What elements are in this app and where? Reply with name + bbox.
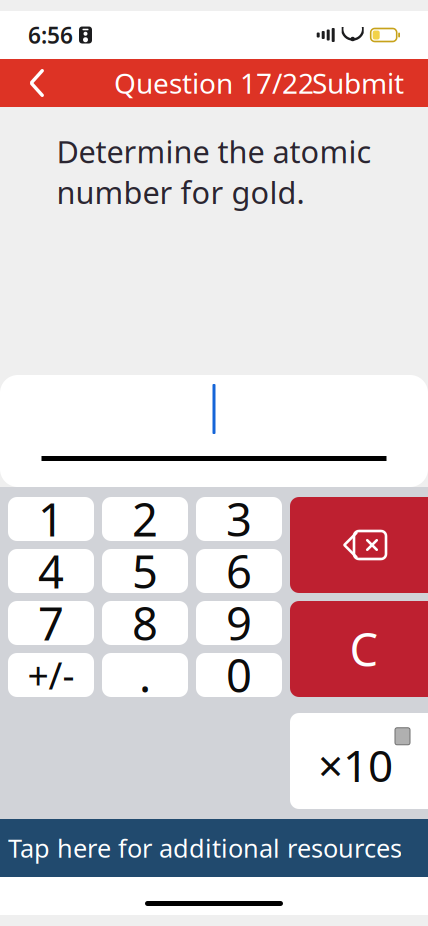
button[interactable]: 9 — [196, 601, 282, 645]
staticText: Question 17/22 — [114, 64, 314, 102]
staticText: 9 — [226, 593, 252, 653]
staticText: Determine the atomic number for gold. — [56, 131, 371, 212]
button[interactable]: ×10 — [290, 713, 428, 809]
button[interactable]: 3 — [196, 497, 282, 541]
staticText: 3 — [226, 489, 252, 549]
staticText: 6:56 — [28, 20, 73, 50]
button[interactable]: 7 — [8, 601, 94, 645]
staticText: 4 — [38, 541, 64, 601]
staticText: 7 — [38, 593, 64, 653]
button[interactable]: C — [290, 601, 428, 697]
button[interactable]: 8 — [102, 601, 188, 645]
button[interactable]: 5 — [102, 549, 188, 593]
button[interactable]: Submit — [298, 59, 418, 107]
button[interactable]: 2 — [102, 497, 188, 541]
staticText: 2 — [132, 489, 158, 549]
staticText: 5 — [132, 541, 158, 601]
staticText: C — [349, 619, 378, 679]
button[interactable]: +/- — [8, 653, 94, 697]
staticText: 1 — [38, 489, 64, 549]
button[interactable]: 6 — [196, 549, 282, 593]
button[interactable]: Back — [10, 59, 64, 107]
button[interactable]: 0 — [196, 653, 282, 697]
button[interactable]: Tap here for additional resources — [0, 819, 428, 877]
button[interactable]: 4 — [8, 549, 94, 593]
button[interactable]: 1 — [8, 497, 94, 541]
staticText: Tap here for additional resources — [8, 831, 402, 865]
staticText: ×10 — [318, 736, 393, 794]
staticText: 0 — [226, 645, 252, 705]
staticText: Submit — [312, 64, 404, 102]
staticText: . — [139, 645, 151, 705]
staticText: 6 — [226, 541, 252, 601]
staticText: +/- — [27, 650, 74, 700]
button[interactable]: . — [102, 653, 188, 697]
staticText: 8 — [132, 593, 158, 653]
button[interactable]: Delete — [290, 497, 428, 593]
